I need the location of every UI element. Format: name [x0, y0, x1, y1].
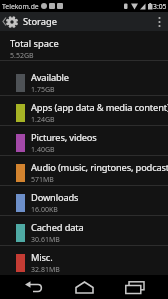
button[interactable]: Storage — [0, 12, 168, 31]
staticText: 5.52GB — [10, 51, 34, 60]
staticText: Cached data — [31, 221, 84, 234]
staticText: Downloads — [31, 191, 79, 204]
button[interactable]: Total space — [10, 31, 168, 60]
button[interactable]: Misc. — [0, 245, 168, 275]
button[interactable]: Downloads — [0, 185, 168, 215]
staticText: 30.61MB — [31, 235, 60, 245]
staticText: Audio (music, ringtones, podcasts, etc.) — [31, 161, 168, 174]
button[interactable]: Available — [0, 66, 168, 95]
staticText: 16.00KB — [31, 205, 58, 215]
staticText: 1.24GB — [31, 115, 55, 125]
staticText: 1.75GB — [31, 85, 55, 95]
staticText: Apps (app data & media content) — [31, 101, 168, 114]
staticText: Total space — [10, 37, 59, 50]
staticText: Telekom.de — [2, 2, 39, 11]
staticText: Available — [31, 71, 69, 84]
staticText: Pictures, videos — [31, 131, 97, 144]
staticText: 3:05 — [153, 2, 167, 11]
staticText: 571MB — [31, 175, 54, 185]
button[interactable] — [17, 275, 51, 299]
button[interactable]: Cached data — [0, 215, 168, 245]
staticText: 32.81MB — [31, 265, 60, 275]
button[interactable]: Audio (music, ringtones, podcasts, etc.) — [0, 155, 168, 185]
button[interactable] — [118, 275, 152, 299]
button[interactable]: Apps (app data & media content) — [0, 95, 168, 125]
staticText: Storage — [23, 15, 57, 28]
staticText: 1.40GB — [31, 145, 55, 155]
button[interactable]: Pictures, videos — [0, 125, 168, 155]
button[interactable] — [67, 275, 101, 299]
staticText: Misc. — [31, 251, 53, 264]
